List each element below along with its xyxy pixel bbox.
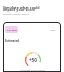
staticText: See how changes affect it (3, 13, 30, 16)
staticText: +50 (29, 57, 37, 63)
button[interactable]: Pay debt (3, 22, 61, 72)
staticText: Edit (51, 28, 56, 31)
staticText: Simulate what could impact your score (3, 5, 40, 12)
staticText: Estimated (5, 39, 20, 43)
button[interactable]: Pay debt (5, 26, 18, 33)
staticText: Pay debt (7, 28, 17, 31)
staticText: Estimated score change (20, 69, 45, 72)
